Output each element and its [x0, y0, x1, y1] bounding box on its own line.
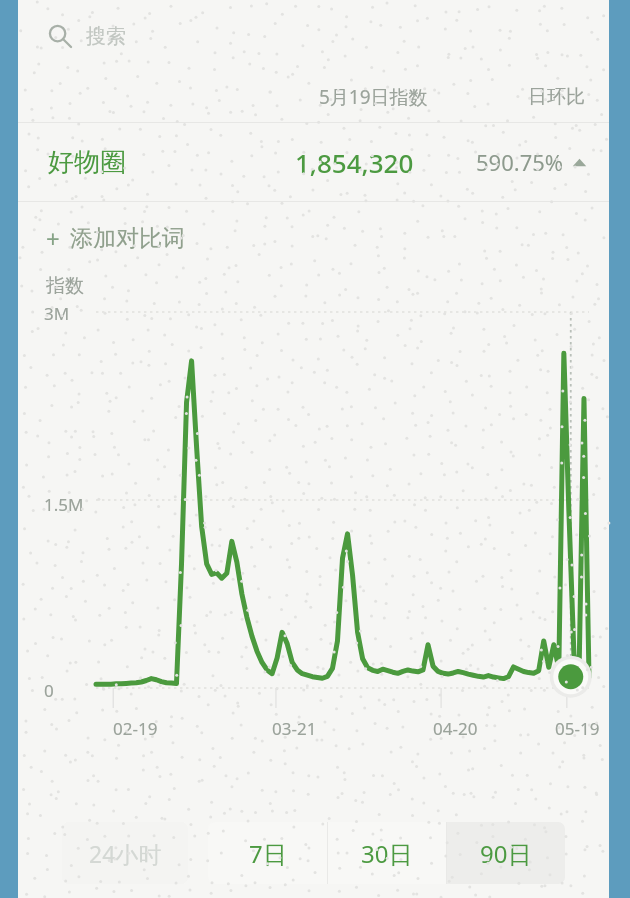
button[interactable]: 30日: [328, 822, 446, 884]
staticText: +: [46, 222, 60, 255]
button[interactable]: 24小时: [62, 822, 188, 884]
other: Search: [48, 24, 72, 48]
staticText: 好物圈: [48, 146, 126, 179]
staticText: 04-20: [433, 717, 478, 740]
staticText: 搜索: [86, 24, 126, 49]
staticText: 日环比: [528, 85, 585, 109]
staticText: 0: [44, 679, 54, 702]
button[interactable]: 90日: [447, 822, 565, 884]
button[interactable]: 7日: [208, 822, 327, 884]
staticText: 7日: [249, 837, 287, 870]
staticText: 指数: [46, 274, 84, 298]
staticText: 02-19: [113, 717, 158, 740]
staticText: 添加对比词: [70, 224, 185, 253]
staticText: 1.5M: [44, 493, 84, 516]
staticText: 90日: [480, 837, 532, 870]
staticText: 05-19: [555, 717, 600, 740]
staticText: 30日: [361, 837, 413, 870]
button[interactable]: +: [18, 202, 609, 274]
staticText: 3M: [44, 302, 70, 325]
staticText: 1,854,320: [295, 145, 414, 180]
staticText: 590.75%: [476, 147, 564, 177]
staticText: 5月19日指数: [319, 84, 428, 110]
staticText: 03-21: [272, 717, 317, 740]
button[interactable]: 好物圈: [18, 123, 609, 201]
button[interactable]: Search: [18, 0, 609, 72]
staticText: 24小时: [89, 838, 162, 869]
